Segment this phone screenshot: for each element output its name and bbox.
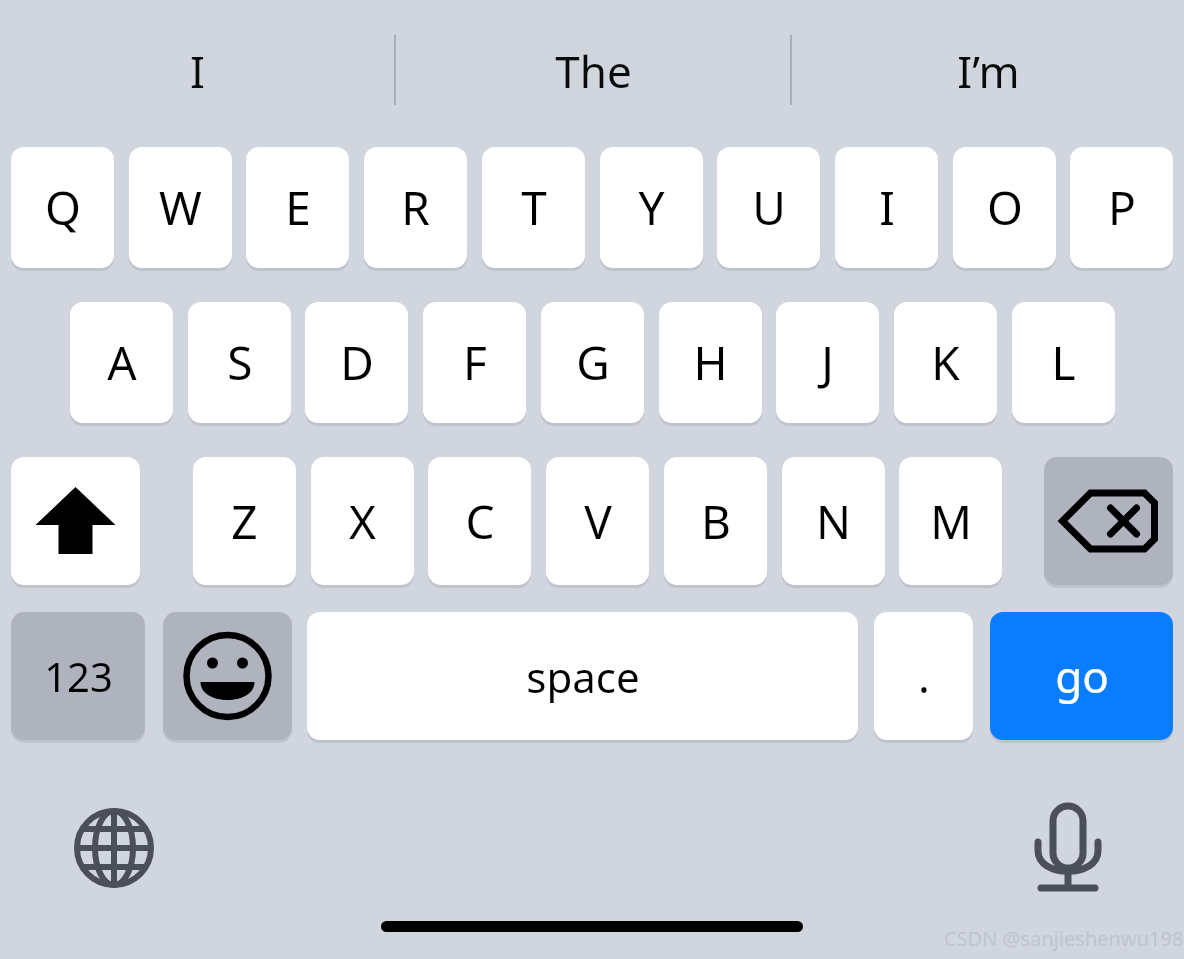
button[interactable]: 123	[11, 612, 145, 740]
staticText: T	[521, 176, 547, 239]
button[interactable]: T	[482, 147, 585, 268]
button[interactable]: Emoji	[163, 612, 292, 740]
staticText: A	[107, 331, 137, 394]
button[interactable]: U	[717, 147, 820, 268]
staticText: CSDN @sanjieshenwu1987	[944, 925, 1184, 952]
button[interactable]: Shift	[11, 457, 140, 585]
button[interactable]: Dictation	[1018, 798, 1118, 898]
button[interactable]: go	[990, 612, 1173, 740]
button[interactable]: I’m	[818, 32, 1158, 110]
staticText: D	[340, 331, 374, 394]
staticText: Z	[231, 490, 258, 553]
button[interactable]: F	[423, 302, 526, 423]
button[interactable]: O	[953, 147, 1056, 268]
staticText: N	[816, 490, 851, 553]
button[interactable]: A	[70, 302, 173, 423]
staticText: M	[930, 490, 972, 553]
staticText: .	[918, 646, 930, 706]
staticText: K	[931, 331, 960, 394]
staticText: 123	[44, 649, 113, 703]
staticText: G	[576, 331, 610, 394]
staticText: F	[463, 331, 487, 394]
staticText: Q	[45, 176, 81, 239]
button[interactable]: B	[664, 457, 767, 585]
staticText: E	[285, 176, 311, 239]
button[interactable]: .	[874, 612, 973, 740]
button[interactable]: Change keyboard	[64, 798, 164, 898]
button[interactable]: I	[835, 147, 938, 268]
staticText: I	[879, 176, 895, 239]
button[interactable]: G	[541, 302, 644, 423]
button[interactable]: L	[1012, 302, 1115, 423]
button[interactable]: X	[311, 457, 414, 585]
button[interactable]: P	[1070, 147, 1173, 268]
button[interactable]: R	[364, 147, 467, 268]
button[interactable]: Z	[193, 457, 296, 585]
staticText: go	[1055, 646, 1109, 706]
button[interactable]: D	[305, 302, 408, 423]
staticText: W	[159, 176, 202, 239]
button[interactable]: E	[246, 147, 349, 268]
button[interactable]: The	[423, 32, 763, 110]
button[interactable]: H	[659, 302, 762, 423]
staticText: space	[526, 648, 640, 705]
staticText: U	[752, 176, 786, 239]
staticText: C	[465, 490, 495, 553]
button[interactable]: M	[899, 457, 1002, 585]
staticText: The	[555, 41, 632, 101]
button[interactable]: V	[546, 457, 649, 585]
staticText: V	[584, 490, 612, 553]
button[interactable]: Q	[11, 147, 114, 268]
staticText: B	[701, 490, 731, 553]
button[interactable]: I	[27, 32, 367, 110]
staticText: I	[190, 41, 205, 101]
button[interactable]: Delete	[1044, 457, 1173, 585]
button[interactable]: S	[188, 302, 291, 423]
staticText: H	[693, 331, 728, 394]
staticText: Y	[638, 176, 665, 239]
staticText: X	[349, 490, 376, 553]
staticText: S	[227, 331, 253, 394]
button[interactable]: Y	[600, 147, 703, 268]
button[interactable]: N	[782, 457, 885, 585]
staticText: P	[1108, 176, 1136, 239]
button[interactable]: space	[307, 612, 858, 740]
staticText: R	[401, 176, 430, 239]
staticText: O	[987, 176, 1023, 239]
button[interactable]: W	[129, 147, 232, 268]
staticText: J	[821, 331, 834, 394]
staticText: L	[1051, 331, 1076, 394]
button[interactable]: K	[894, 302, 997, 423]
staticText: I’m	[957, 41, 1020, 101]
button[interactable]: J	[776, 302, 879, 423]
button[interactable]: C	[428, 457, 531, 585]
